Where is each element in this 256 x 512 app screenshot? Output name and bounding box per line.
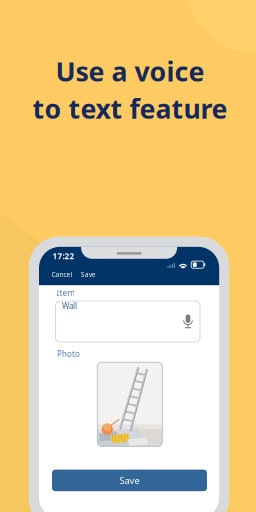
staticText: Item xyxy=(56,287,74,298)
staticText: Save xyxy=(119,474,139,487)
staticText: Wall xyxy=(62,301,77,311)
staticText: 17:22 xyxy=(53,251,75,261)
staticText: Use a voice xyxy=(55,53,204,89)
staticText: Save xyxy=(81,270,96,279)
button[interactable]: Save xyxy=(81,268,101,280)
staticText: Photo xyxy=(57,348,80,359)
button[interactable]: Save xyxy=(52,470,207,491)
button[interactable]: Cancel xyxy=(51,268,81,280)
staticText: to text feature xyxy=(32,91,227,126)
staticText: Cancel xyxy=(51,270,72,279)
